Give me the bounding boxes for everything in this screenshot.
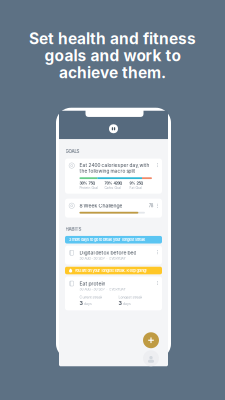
button[interactable]: You are on your longest streak. Keep goi… bbox=[65, 267, 162, 274]
staticText: You are on your longest streak. Keep goi… bbox=[75, 268, 147, 273]
staticText: Set health and fitness bbox=[29, 29, 196, 48]
staticText: Protein Goal bbox=[79, 186, 98, 190]
staticText: Fat Goal bbox=[129, 186, 142, 190]
staticText: days bbox=[84, 302, 92, 306]
staticText: goals and work to bbox=[44, 46, 180, 65]
staticText: Current streak bbox=[79, 295, 102, 299]
button[interactable]: Add bbox=[143, 332, 159, 348]
staticText: HABITS bbox=[65, 227, 81, 232]
staticText: 30% 75g bbox=[79, 181, 94, 185]
staticText: achieve them. bbox=[59, 63, 166, 82]
staticText: 3 bbox=[118, 300, 121, 306]
staticText: Carbs Goal bbox=[104, 186, 121, 190]
staticText: Longest streak bbox=[118, 295, 142, 299]
button[interactable]: Eat protein bbox=[65, 276, 162, 310]
staticText: days bbox=[123, 302, 131, 306]
staticText: GOALS bbox=[65, 149, 79, 154]
button[interactable]: Eat 2400 calories per day, with the foll… bbox=[65, 159, 162, 194]
staticText: Eat protein bbox=[79, 280, 105, 287]
staticText: Digital detox before bed bbox=[79, 250, 136, 256]
staticText: 3 bbox=[79, 300, 82, 306]
staticText: 70% 420g bbox=[104, 181, 121, 185]
staticText: 9% 25g bbox=[129, 181, 142, 185]
button[interactable]: 3 more days to go to break your longest … bbox=[65, 236, 162, 243]
button[interactable]: Profile bbox=[143, 350, 159, 366]
button[interactable]: 8 Week Challenge bbox=[65, 199, 162, 218]
staticText: Eat 2400 calories per day, with the foll… bbox=[79, 163, 149, 174]
staticText: 30 AUG - 30 SEP · EVERYDAY bbox=[79, 287, 125, 291]
staticText: 30 AUG - 30 SEP · EVERYDAY bbox=[79, 257, 125, 260]
staticText: 3 more days to go to break your longest … bbox=[69, 237, 145, 242]
button[interactable]: Digital detox before bed bbox=[65, 246, 162, 264]
staticText: 8 Week Challenge bbox=[79, 203, 122, 209]
staticText: 78 bbox=[149, 203, 154, 208]
